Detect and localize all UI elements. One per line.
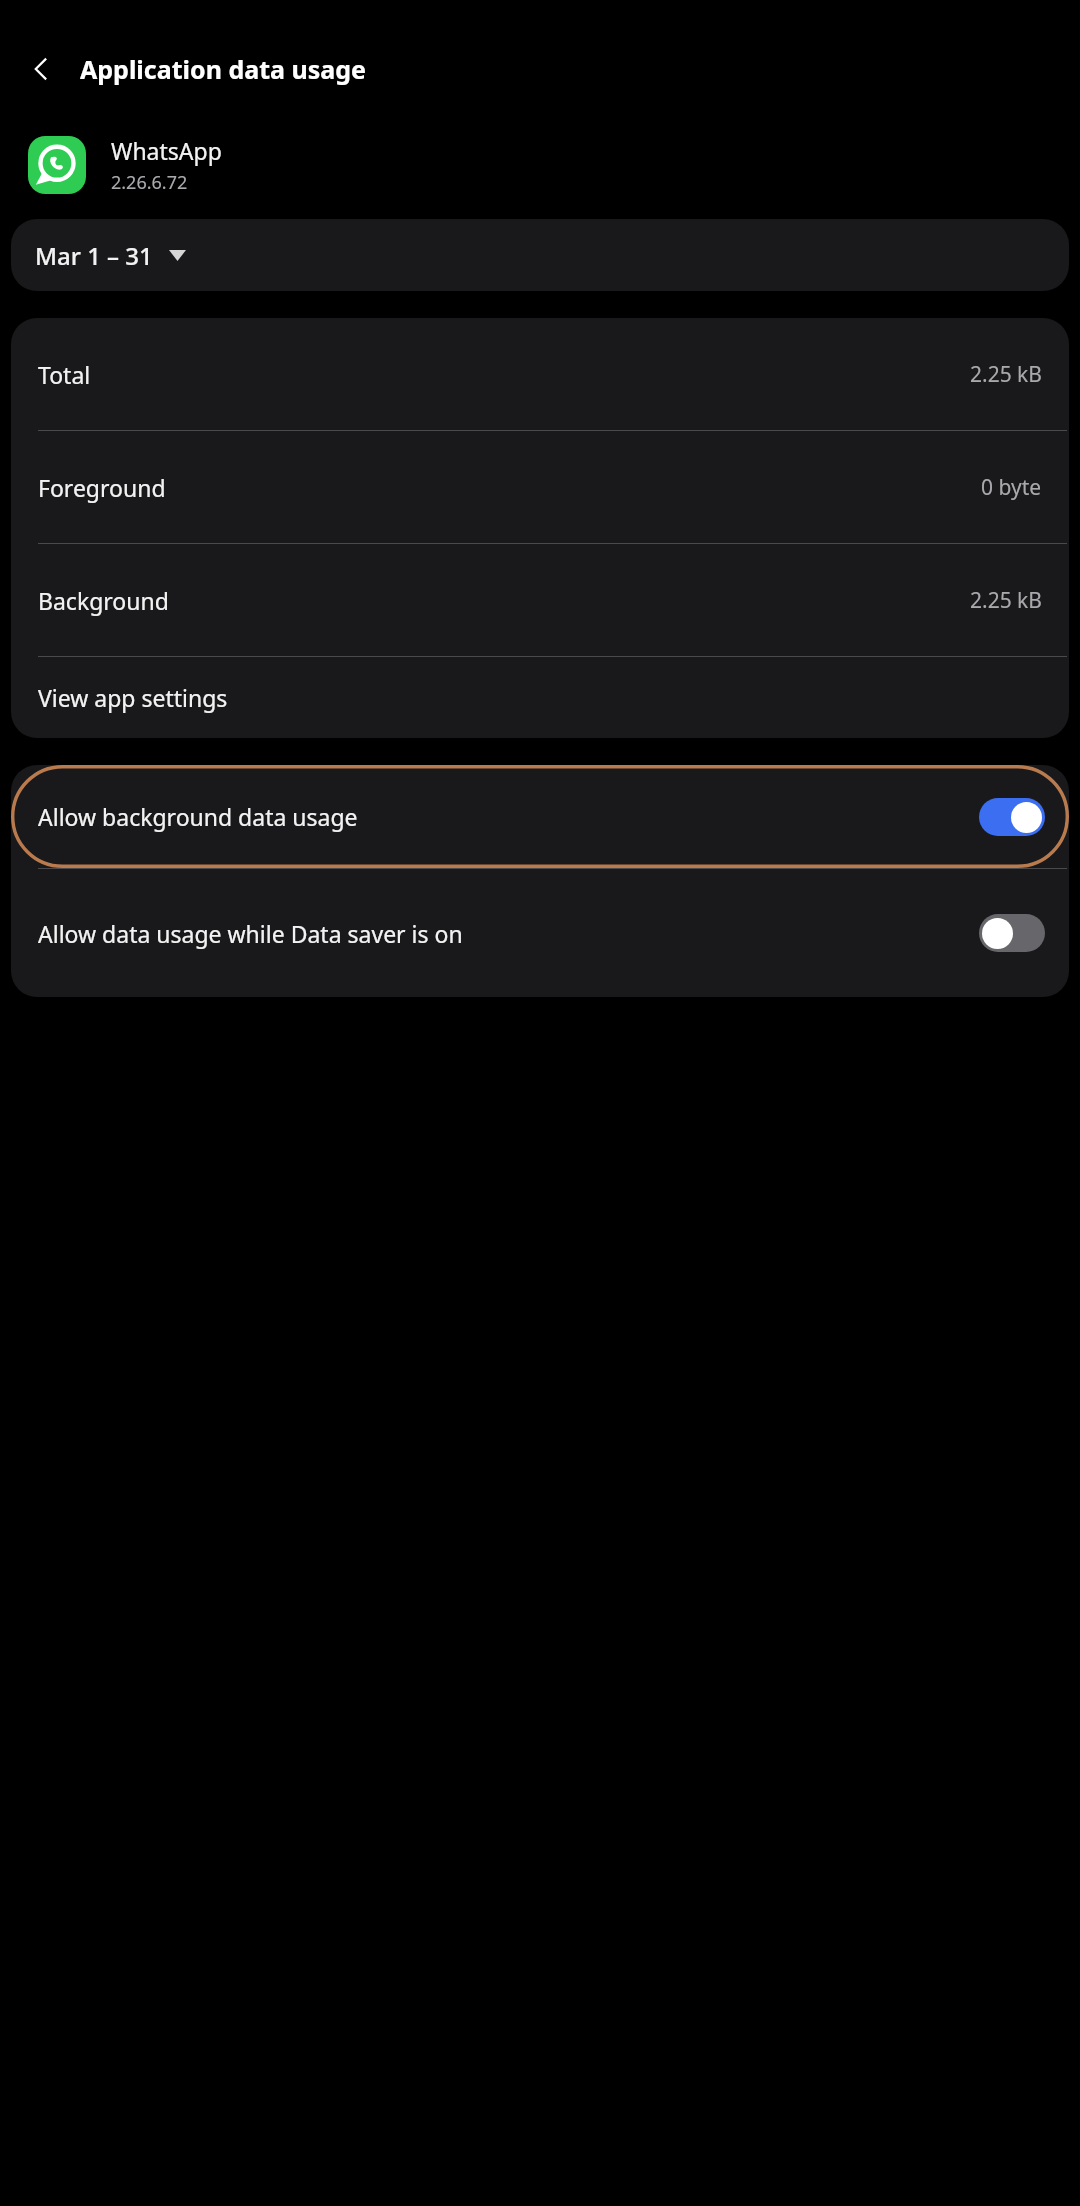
button[interactable]: Toggle off — [979, 914, 1045, 952]
button[interactable]: Mar 1 – 31 — [11, 219, 1069, 291]
staticText: 2.25 kB — [970, 360, 1042, 389]
button[interactable]: Total — [11, 318, 1069, 430]
staticText: Allow data usage while Data saver is on — [38, 918, 463, 949]
staticText: Background — [38, 585, 169, 616]
staticText: Application data usage — [80, 52, 367, 86]
button[interactable]: Background — [11, 544, 1069, 656]
staticText: 2.25 kB — [970, 586, 1042, 615]
staticText: Foreground — [38, 472, 166, 503]
staticText: View app settings — [38, 682, 228, 713]
staticText: 2.26.6.72 — [111, 170, 188, 195]
button[interactable]: Back — [14, 41, 70, 97]
button[interactable]: Toggle on — [979, 798, 1045, 836]
button[interactable]: Foreground — [11, 431, 1069, 543]
button[interactable]: View app settings — [11, 657, 1069, 738]
button[interactable]: Allow background data usage — [11, 765, 1069, 868]
staticText: Total — [38, 359, 91, 390]
staticText: Allow background data usage — [38, 801, 358, 832]
staticText: 0 byte — [981, 473, 1042, 502]
staticText: WhatsApp — [111, 135, 222, 166]
button[interactable]: Allow data usage while Data saver is on — [11, 869, 1069, 997]
staticText: Mar 1 – 31 — [35, 239, 153, 272]
